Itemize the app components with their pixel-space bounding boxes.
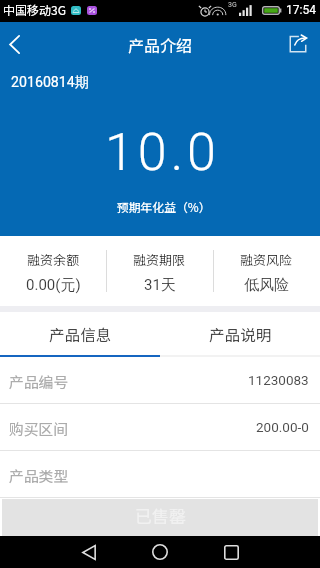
button[interactable]: 购买区间: [0, 404, 320, 451]
staticText: 10.0: [105, 122, 220, 183]
staticText: 0.00(元): [26, 276, 81, 295]
button[interactable]: Recents: [211, 536, 251, 568]
staticText: 产品说明: [209, 323, 272, 346]
staticText: 产品介绍: [128, 33, 193, 56]
staticText: 融资余额: [27, 250, 80, 269]
staticText: 200.00-0: [256, 419, 309, 435]
staticText: 融资期限: [133, 250, 186, 269]
staticText: 20160814期: [11, 73, 89, 91]
staticText: 产品类型: [9, 465, 69, 486]
staticText: 17:54: [286, 3, 316, 17]
staticText: 产品编号: [9, 371, 69, 392]
staticText: 低风险: [244, 276, 289, 295]
button[interactable]: Home: [140, 536, 180, 568]
button[interactable]: Share: [276, 22, 320, 66]
button[interactable]: 融资余额: [0, 236, 106, 306]
staticText: 融资风险: [240, 250, 293, 269]
staticText: 产品信息: [49, 323, 112, 346]
button[interactable]: 产品编号: [0, 357, 320, 404]
staticText: 预期年化益（%）: [117, 198, 211, 215]
button[interactable]: Back: [69, 536, 109, 568]
staticText: 购买区间: [9, 418, 69, 439]
button[interactable]: 产品说明: [160, 312, 320, 355]
button[interactable]: 融资风险: [213, 236, 320, 306]
staticText: 31天: [144, 276, 176, 295]
button[interactable]: 产品信息: [0, 312, 160, 355]
staticText: 已售罄: [135, 503, 186, 528]
staticText: 中国移动3G: [3, 1, 66, 18]
button[interactable]: 融资期限: [106, 236, 213, 306]
button[interactable]: Back: [0, 22, 38, 66]
staticText: 3G: [228, 1, 237, 9]
button[interactable]: 产品类型: [0, 451, 320, 498]
staticText: 11230083: [248, 372, 309, 388]
